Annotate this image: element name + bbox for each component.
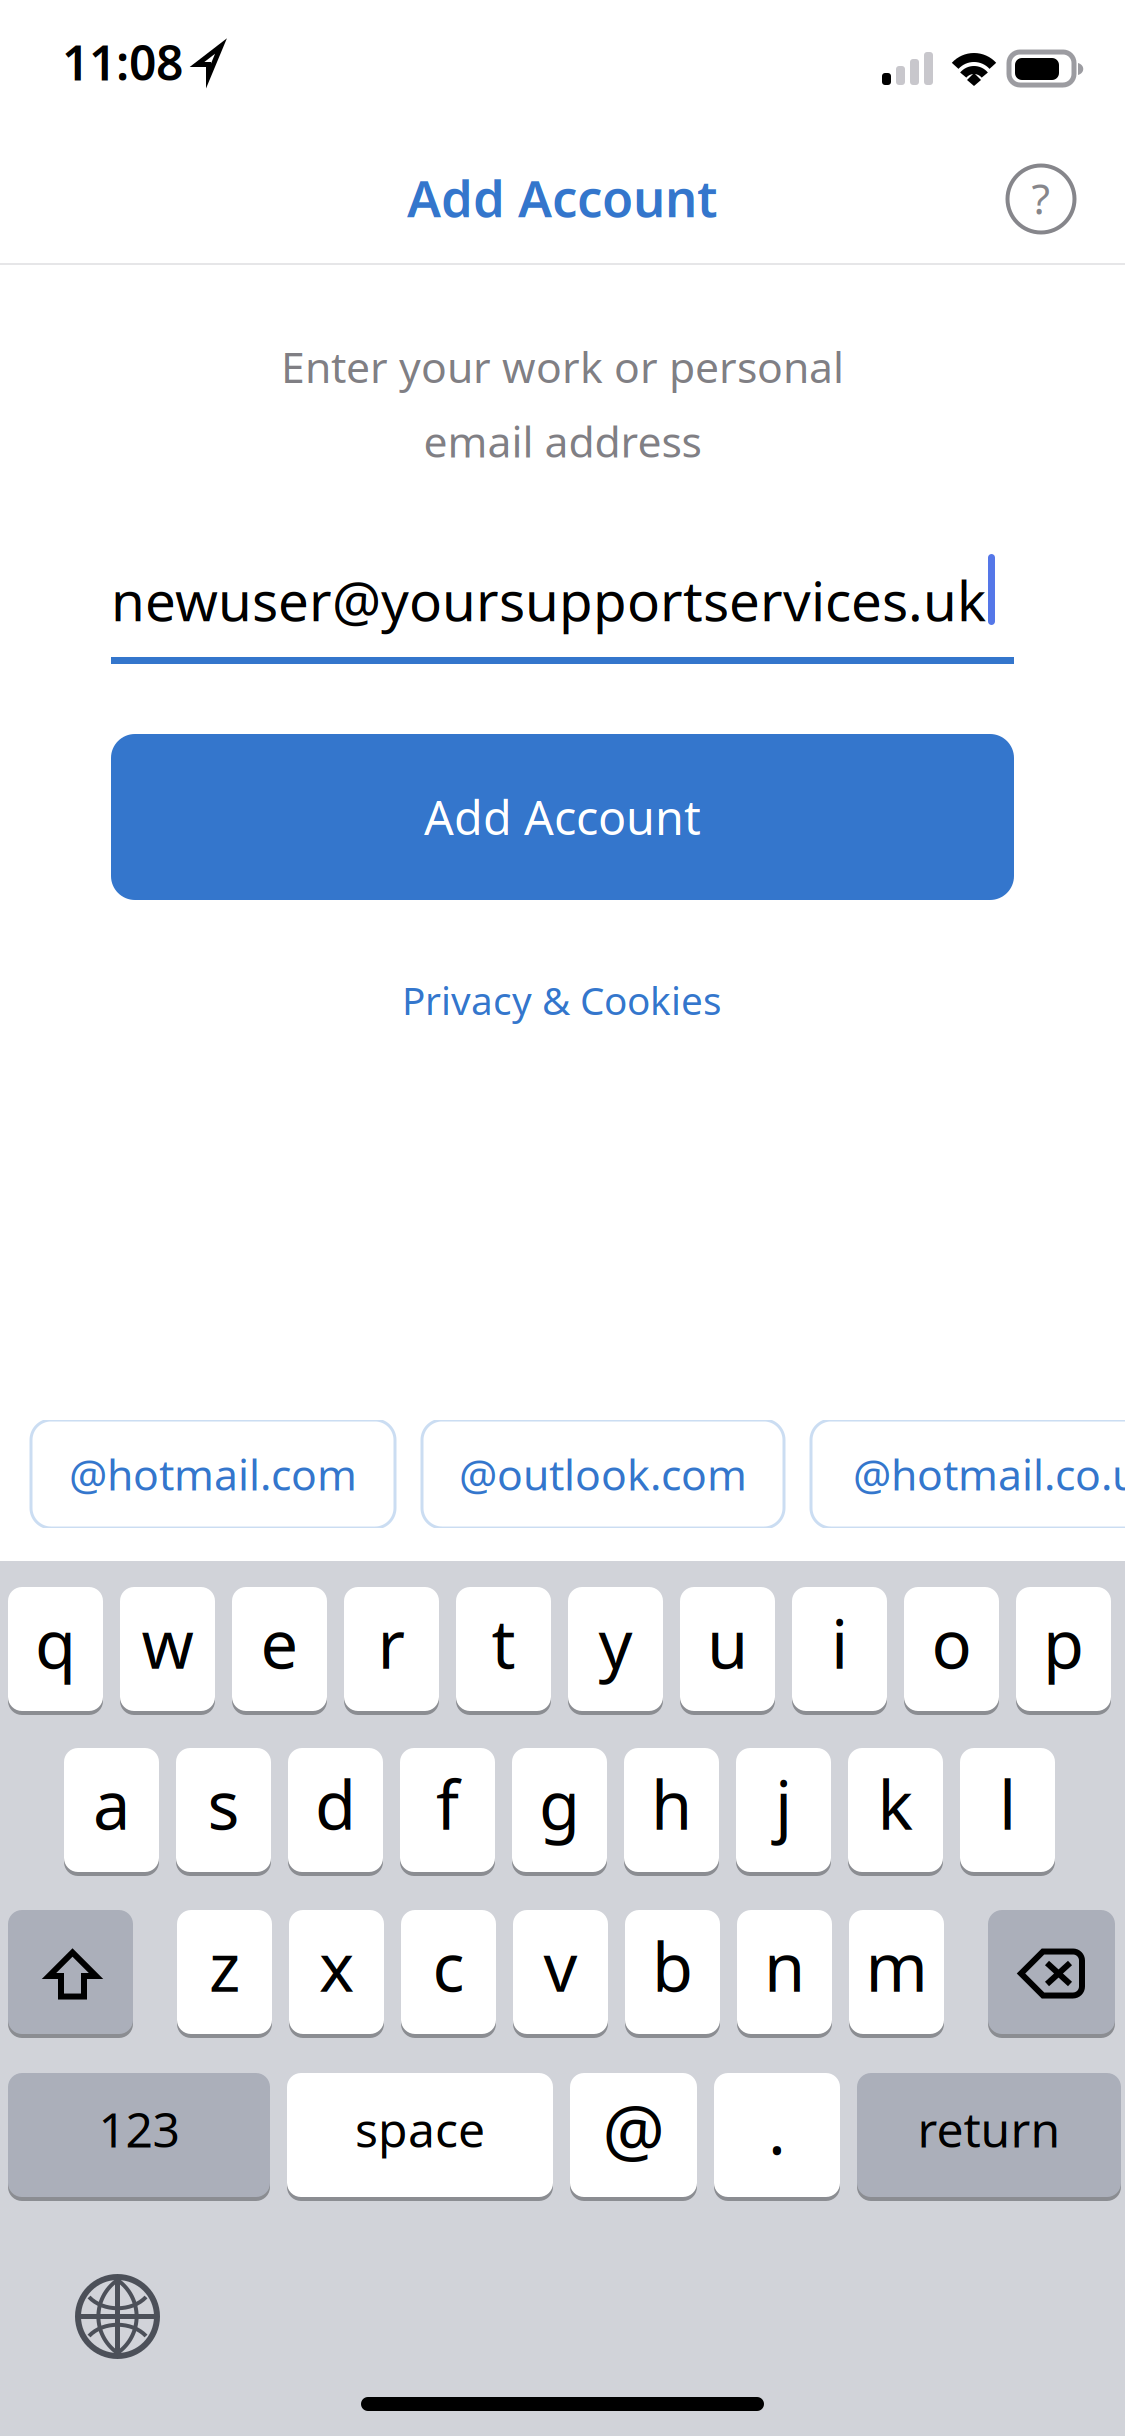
staticText: z (209, 1922, 240, 2010)
staticText: g (539, 1760, 580, 1848)
button[interactable]: Shift (8, 1908, 133, 2036)
button[interactable]: v (513, 1908, 608, 2036)
staticText: c (432, 1922, 464, 2010)
button[interactable]: k (848, 1746, 943, 1874)
staticText: @hotmail.co.uk (853, 1446, 1125, 1502)
staticText: i (831, 1599, 848, 1687)
staticText: s (207, 1760, 239, 1848)
button[interactable]: n (737, 1908, 832, 2036)
staticText: k (877, 1760, 913, 1848)
staticText: e (260, 1599, 298, 1687)
staticText: Privacy & Cookies (402, 974, 722, 1026)
staticText: n (764, 1922, 805, 2010)
button[interactable]: d (288, 1746, 383, 1874)
staticText: u (707, 1599, 748, 1687)
staticText: v (543, 1922, 577, 2010)
button[interactable]: Next keyboard (78, 2277, 157, 2356)
button[interactable]: t (456, 1585, 551, 1713)
staticText: x (319, 1922, 354, 2010)
staticText: a (93, 1760, 130, 1848)
staticText: h (651, 1760, 692, 1848)
button[interactable]: a (64, 1746, 159, 1874)
button[interactable]: Help (989, 147, 1093, 251)
staticText: l (999, 1760, 1016, 1848)
staticText: Enter your work or personal (281, 338, 844, 395)
button[interactable]: h (624, 1746, 719, 1874)
button[interactable]: u (680, 1585, 775, 1713)
staticText: t (491, 1599, 515, 1687)
staticText: j (775, 1760, 792, 1848)
button[interactable]: space (287, 2071, 553, 2199)
button[interactable]: Privacy & Cookies (312, 962, 812, 1038)
staticText: m (865, 1922, 927, 2010)
staticText: newuser@yoursupportservices.uk (111, 564, 986, 636)
button[interactable]: q (8, 1585, 103, 1713)
staticText: 11:08 (62, 30, 183, 94)
staticText: Add Account (424, 786, 701, 848)
staticText: @hotmail.com (69, 1446, 357, 1502)
button[interactable]: f (400, 1746, 495, 1874)
button[interactable]: m (849, 1908, 944, 2036)
staticText: . (768, 2085, 786, 2173)
button[interactable]: @hotmail.co.uk (811, 1420, 1125, 1528)
staticText: space (355, 2097, 485, 2161)
button[interactable]: x (289, 1908, 384, 2036)
button[interactable]: z (177, 1908, 272, 2036)
button[interactable]: . (714, 2071, 840, 2199)
staticText: b (652, 1922, 693, 2010)
staticText: 123 (98, 2097, 179, 2161)
button[interactable]: newuser@yoursupportservices.uk (111, 551, 1021, 671)
button[interactable]: r (344, 1585, 439, 1713)
staticText: r (377, 1599, 405, 1687)
button[interactable]: Add Account (111, 734, 1014, 900)
button[interactable]: e (232, 1585, 327, 1713)
button[interactable]: @ (570, 2071, 697, 2199)
button[interactable]: g (512, 1746, 607, 1874)
staticText: w (141, 1599, 193, 1687)
button[interactable]: i (792, 1585, 887, 1713)
button[interactable]: y (568, 1585, 663, 1713)
staticText: @ (602, 2083, 664, 2175)
button[interactable]: b (625, 1908, 720, 2036)
staticText: return (917, 2097, 1060, 2161)
staticText: d (315, 1760, 356, 1848)
staticText: p (1043, 1599, 1084, 1687)
staticText: f (436, 1760, 459, 1848)
staticText: Add Account (407, 164, 718, 231)
button[interactable]: w (120, 1585, 215, 1713)
button[interactable]: 123 (8, 2071, 270, 2199)
button[interactable]: o (904, 1585, 999, 1713)
button[interactable]: p (1016, 1585, 1111, 1713)
button[interactable]: @outlook.com (422, 1420, 784, 1528)
button[interactable]: Delete (988, 1908, 1115, 2036)
staticText: email address (423, 413, 701, 469)
button[interactable]: l (960, 1746, 1055, 1874)
staticText: y (598, 1599, 632, 1687)
staticText: ? (1031, 170, 1050, 226)
staticText: @outlook.com (459, 1446, 747, 1502)
button[interactable]: j (736, 1746, 831, 1874)
button[interactable]: return (857, 2071, 1121, 2199)
staticText: q (35, 1599, 76, 1687)
staticText: o (931, 1599, 971, 1687)
button[interactable]: s (176, 1746, 271, 1874)
button[interactable]: c (401, 1908, 496, 2036)
button[interactable]: @hotmail.com (31, 1420, 395, 1528)
